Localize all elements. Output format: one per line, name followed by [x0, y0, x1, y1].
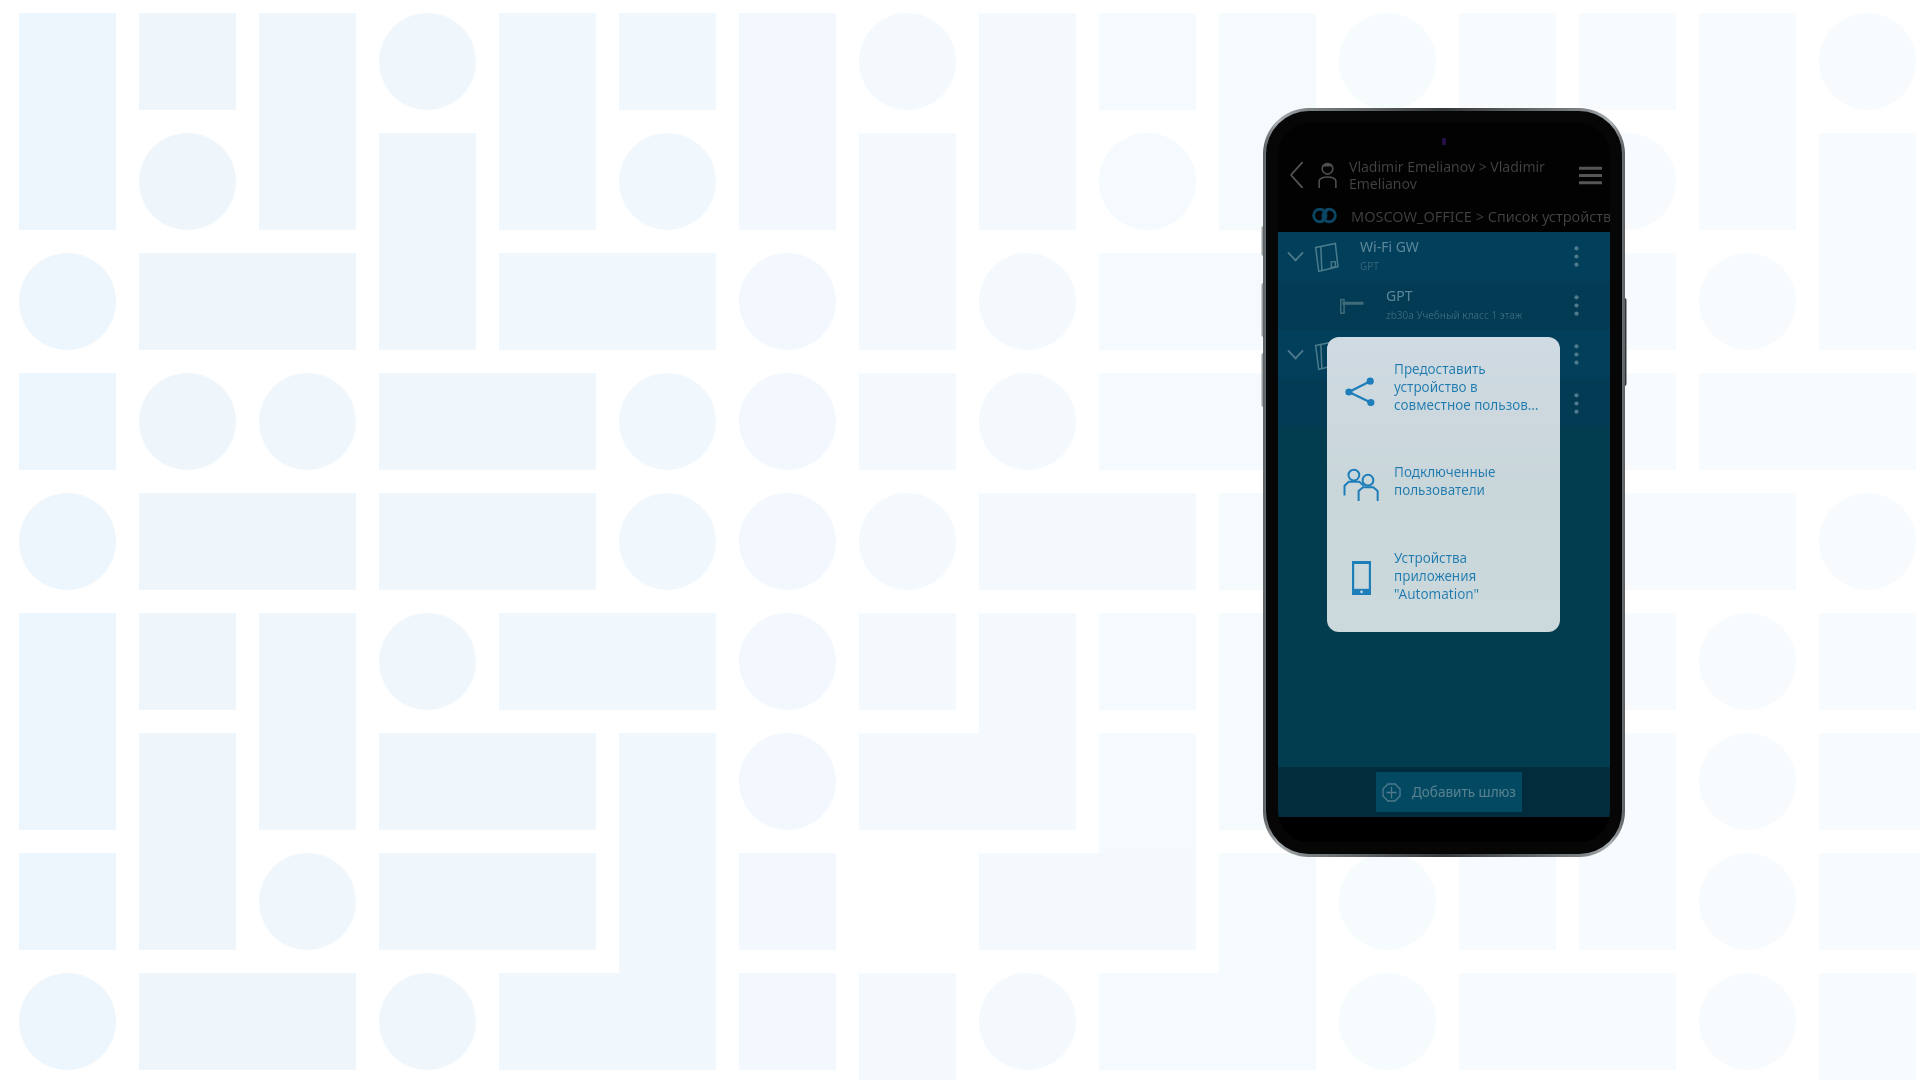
staticText: Vladimir Emelianov > Vladimir Emelianov — [1349, 157, 1570, 193]
staticText: Устройства — [1394, 549, 1468, 567]
staticText: Предоставить — [1394, 360, 1486, 378]
button[interactable]: More options — [1563, 281, 1589, 330]
staticText: GPT — [1360, 259, 1379, 273]
staticText: Подключенные — [1394, 463, 1496, 481]
button[interactable]: More options — [1563, 330, 1589, 379]
button[interactable]: More options — [1563, 232, 1589, 281]
staticText: Wi-Fi GW — [1360, 237, 1419, 256]
button[interactable]: More options — [1563, 379, 1589, 428]
staticText: zb30a Учебный класс 1 этаж — [1386, 308, 1523, 322]
button[interactable]: Предоставить — [1327, 350, 1560, 428]
button[interactable]: GPT — [1278, 281, 1610, 330]
staticText: MOSCOW_OFFICE > Список устройств — [1351, 206, 1610, 226]
button[interactable]: Подключенные — [1327, 453, 1560, 513]
staticText: совместное пользов… — [1394, 396, 1539, 414]
button[interactable]: Wi-Fi GW — [1278, 232, 1610, 281]
button[interactable]: Добавить шлюз — [1376, 772, 1522, 812]
staticText: GPT — [1386, 286, 1413, 305]
button[interactable]: Back — [1282, 160, 1312, 190]
staticText: Добавить шлюз — [1412, 783, 1516, 801]
button[interactable]: Menu — [1574, 159, 1606, 191]
staticText: приложения — [1394, 567, 1477, 585]
button[interactable]: More options — [1278, 330, 1610, 379]
button[interactable]: Устройства — [1327, 539, 1560, 617]
staticText: "Automation" — [1394, 585, 1480, 603]
staticText: устройство в — [1394, 378, 1478, 396]
staticText: пользователи — [1394, 481, 1485, 499]
button[interactable]: More options — [1278, 379, 1610, 428]
